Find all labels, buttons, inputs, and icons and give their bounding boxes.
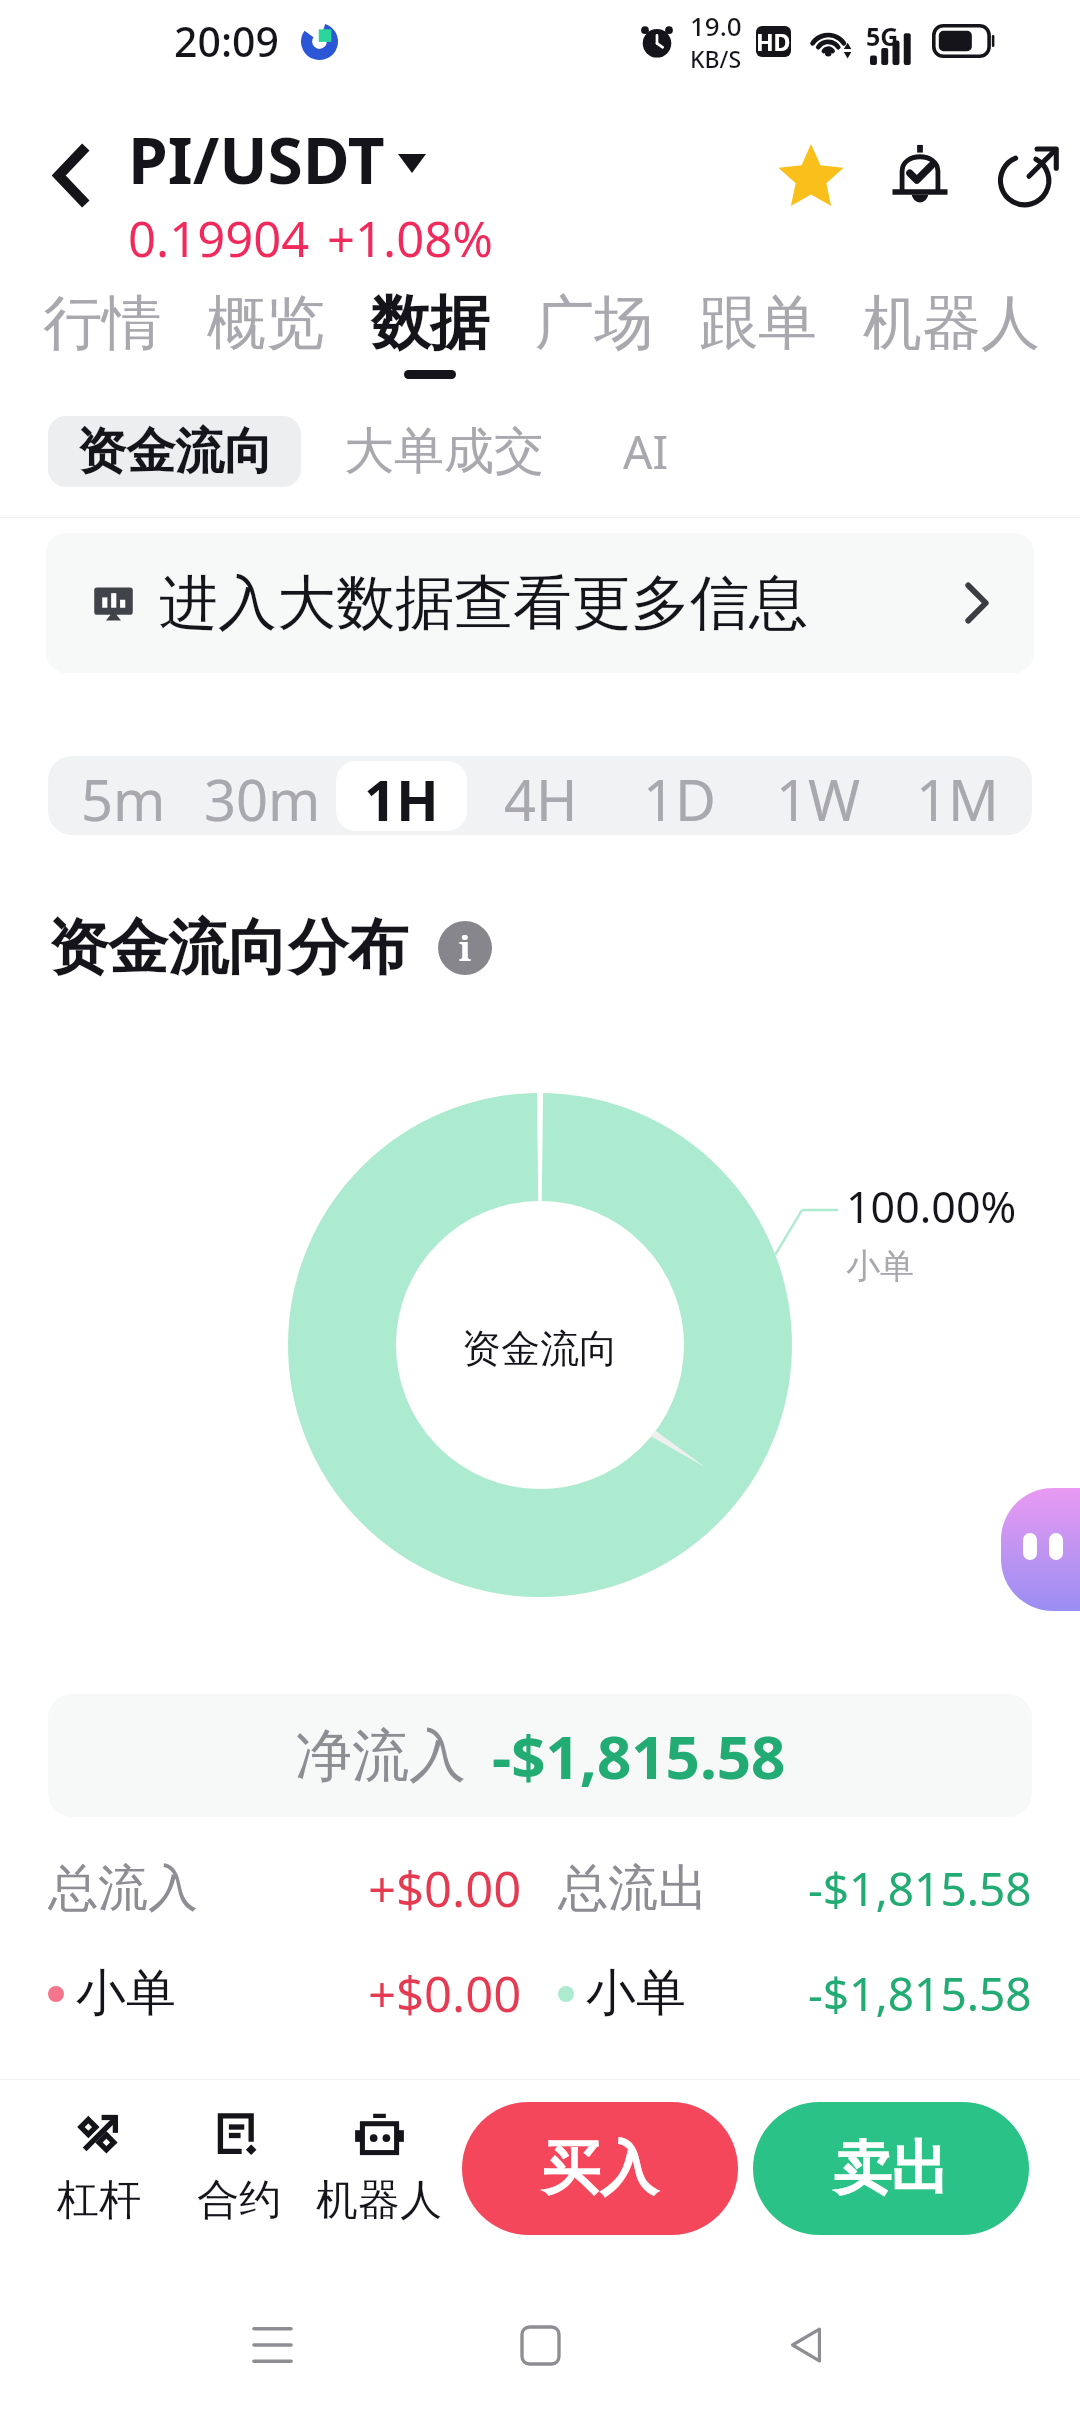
button[interactable]: AI	[587, 416, 704, 487]
staticText: 卖出	[833, 2132, 949, 2205]
button[interactable]: 进入大数据查看更多信息	[46, 533, 1034, 673]
staticText: 广场	[535, 286, 653, 360]
staticText: 大单成交	[344, 420, 544, 483]
staticText: 1D	[643, 761, 716, 831]
staticText: +1.08%	[327, 205, 493, 268]
staticText: 进入大数据查看更多信息	[159, 566, 808, 640]
staticText: 1M	[916, 761, 999, 831]
button[interactable]: 买入	[462, 2102, 738, 2235]
button[interactable]: 数据	[348, 286, 512, 379]
staticText: 小单	[76, 1962, 176, 2025]
staticText: +$0.00	[368, 1855, 522, 1922]
staticText: 跟单	[699, 286, 817, 360]
button[interactable]: 5m	[57, 761, 189, 831]
button[interactable]: Home	[480, 2285, 600, 2405]
staticText: 0.19904	[128, 205, 310, 268]
button[interactable]: Info	[438, 921, 492, 975]
button[interactable]: 杠杆	[29, 2109, 169, 2227]
staticText: PI/USDT	[128, 116, 385, 203]
button[interactable]: 概览	[184, 286, 348, 370]
button[interactable]: 1H	[336, 761, 467, 831]
staticText: -$1,815.58	[492, 1715, 786, 1797]
staticText: 机器人	[863, 286, 1040, 360]
button[interactable]: 广场	[512, 286, 676, 370]
button[interactable]: Price alert	[865, 120, 974, 229]
button[interactable]: Favorite	[756, 120, 865, 229]
staticText: -$1,815.58	[808, 1857, 1032, 1920]
staticText: 30m	[204, 761, 321, 831]
staticText: -$1,815.58	[808, 1962, 1032, 2025]
button[interactable]: 跟单	[676, 286, 840, 370]
staticText: i	[459, 925, 471, 971]
button[interactable]: 4H	[475, 761, 606, 831]
staticText: 净流入	[295, 1720, 466, 1792]
button[interactable]: 1D	[614, 761, 745, 831]
staticText: 杠杆	[57, 2174, 141, 2227]
staticText: 20:09	[174, 13, 279, 69]
button[interactable]: Back	[746, 2285, 866, 2405]
staticText: 小单	[846, 1245, 914, 1288]
staticText: 行情	[43, 286, 161, 360]
button[interactable]: Share	[974, 120, 1080, 229]
staticText: 资金流向	[462, 1324, 618, 1373]
staticText: 总流出	[558, 1857, 708, 1920]
staticText: 4H	[504, 761, 578, 831]
button[interactable]: 机器人	[840, 286, 1063, 370]
staticText: 小单	[586, 1962, 686, 2025]
button[interactable]: 合约	[169, 2109, 309, 2227]
staticText: HD	[756, 26, 791, 57]
staticText: 买入	[542, 2132, 658, 2205]
staticText: AI	[623, 420, 668, 483]
button[interactable]: 1W	[753, 761, 884, 831]
staticText: 概览	[207, 286, 325, 360]
button[interactable]: Recent apps	[212, 2285, 332, 2405]
staticText: 机器人	[316, 2174, 442, 2227]
staticText: 5G	[866, 19, 899, 53]
button[interactable]: 30m	[197, 761, 328, 831]
button[interactable]: 机器人	[309, 2109, 449, 2227]
staticText: 合约	[197, 2174, 281, 2227]
button[interactable]: 卖出	[753, 2102, 1029, 2235]
staticText: +$0.00	[368, 1960, 522, 2027]
staticText: 资金流向分布	[48, 910, 408, 986]
button[interactable]: 行情	[20, 286, 184, 370]
staticText: KB/S	[690, 43, 742, 74]
button[interactable]: 1M	[892, 761, 1023, 831]
button[interactable]: 大单成交	[301, 416, 587, 487]
staticText: 19.0	[690, 8, 742, 43]
staticText: 数据	[371, 286, 489, 360]
staticText: 总流入	[48, 1857, 198, 1920]
button[interactable]: Back	[14, 119, 126, 231]
staticText: 100.00%	[846, 1177, 1017, 1236]
staticText: 1H	[364, 761, 439, 831]
staticText: 1W	[776, 761, 861, 831]
button[interactable]: 资金流向	[48, 416, 301, 487]
staticText: 资金流向	[77, 421, 273, 483]
staticText: 5m	[81, 761, 166, 831]
